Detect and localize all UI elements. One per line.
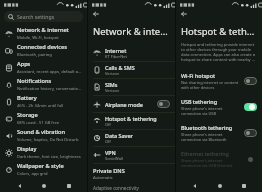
button[interactable]: Network & internet [0, 25, 87, 42]
button[interactable]: Hotspot & tethering [88, 113, 175, 129]
button[interactable]: Battery [0, 93, 87, 110]
button[interactable]: Home [38, 180, 49, 191]
button[interactable]: Apps [0, 59, 87, 76]
staticText: Notification history, conversations [17, 86, 82, 92]
staticText: Hotspot & tethering [105, 115, 157, 122]
staticText: VPN [105, 149, 116, 156]
button[interactable]: Ethernet tethering [176, 146, 262, 172]
button[interactable]: Toggle on [244, 103, 257, 111]
staticText: Automatic [93, 175, 113, 181]
button[interactable]: Connected devices [0, 42, 87, 59]
staticText: SonicWall [105, 156, 123, 161]
staticText: Search settings [17, 13, 55, 20]
button[interactable]: Toggle off [157, 100, 170, 108]
other: Search [8, 14, 14, 20]
staticText: Network & internet [17, 26, 69, 34]
staticText: Apps [17, 60, 31, 68]
button[interactable]: Bluetooth tethering [176, 120, 262, 146]
staticText: Off [105, 139, 111, 144]
staticText: Notifications [17, 77, 52, 85]
button[interactable]: Home [214, 180, 225, 191]
button[interactable]: Data Saver [88, 130, 175, 146]
staticText: Bluetooth, pairing [17, 52, 52, 58]
staticText: Bluetooth tethering [181, 124, 233, 131]
button[interactable]: Recents [63, 180, 74, 191]
staticText: Sound & vibration [17, 128, 65, 136]
button[interactable]: Private DNS [88, 164, 175, 184]
button[interactable]: Back [179, 9, 189, 19]
button[interactable]: USB tethering [176, 94, 262, 120]
staticText: Wallpaper & style [17, 162, 64, 170]
staticText: Battery [17, 94, 37, 102]
button[interactable]: SIMs [88, 79, 175, 95]
button[interactable]: Notifications [0, 76, 87, 93]
staticText: Off [105, 122, 111, 127]
staticText: 46% - 2h 34min until full [17, 103, 64, 109]
staticText: KT FiberNet [105, 54, 127, 59]
staticText: Hotspot & tethering [181, 25, 257, 38]
button[interactable]: Back [14, 180, 25, 191]
staticText: Ethernet tethering [181, 150, 229, 157]
button[interactable]: Sound & vibration [0, 127, 87, 144]
button[interactable]: Wallpaper & style [0, 161, 87, 178]
staticText: Assistant, recent apps, default apps [17, 69, 82, 75]
staticText: Storage [17, 111, 38, 119]
staticText: Share phone's internet connection via US… [181, 158, 241, 168]
staticText: SIMs [105, 81, 118, 88]
staticText: Verizon [105, 71, 120, 76]
button[interactable]: Internet [88, 45, 175, 61]
button[interactable]: Calls & SMS [88, 62, 175, 78]
staticText: Adaptive connectivity [93, 185, 139, 191]
staticText: USB tethering [181, 98, 218, 105]
button[interactable]: Storage [0, 110, 87, 127]
staticText: Connected devices [17, 43, 67, 51]
staticText: Verizon [105, 88, 120, 93]
staticText: Wi-Fi hotspot [181, 72, 216, 79]
button[interactable]: Airplane mode [88, 96, 175, 112]
button[interactable]: Back [91, 9, 101, 19]
button[interactable]: Wi-Fi hotspot [176, 68, 262, 94]
button[interactable]: Search [4, 11, 83, 22]
staticText: Dark theme, font size, brightness [17, 154, 81, 160]
staticText: Colors, app grid [17, 171, 48, 177]
staticText: 68% used - 51 GB free [17, 120, 60, 126]
staticText: Volume, haptics, Do Not Disturb [17, 137, 79, 143]
button[interactable]: Display [0, 144, 87, 161]
button[interactable]: Toggle off [244, 77, 257, 85]
staticText: Airplane mode [105, 101, 143, 108]
staticText: Data Saver [105, 132, 133, 139]
staticText: Display [17, 145, 37, 153]
staticText: Calls & SMS [105, 64, 135, 71]
staticText: Mobile, Wi-Fi, hotspot [17, 35, 59, 41]
staticText: Private DNS [93, 167, 125, 175]
button[interactable]: Toggle off [244, 129, 257, 137]
staticText: Hotspot and tethering provide internet t… [181, 42, 257, 62]
staticText: Share phone's internet connection via US… [181, 106, 241, 116]
staticText: Share phone's internet connection via Bl… [181, 132, 241, 142]
button[interactable]: VPN [88, 147, 175, 163]
button[interactable]: Back [189, 180, 200, 191]
staticText: Not sharing internet or content with oth… [181, 80, 241, 90]
staticText: Internet [105, 47, 127, 54]
button[interactable]: Recents [238, 180, 249, 191]
staticText: Network & internet [93, 25, 170, 38]
